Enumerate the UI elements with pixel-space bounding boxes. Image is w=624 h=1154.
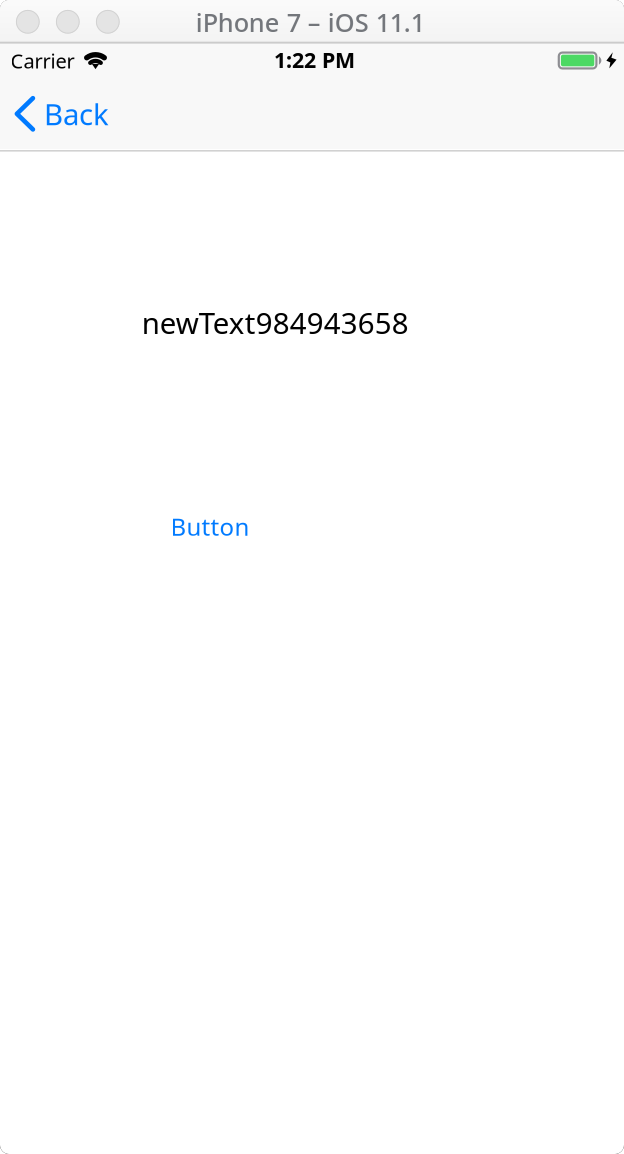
staticText: iPhone 7 – iOS 11.1	[196, 5, 425, 39]
button[interactable]: Back	[8, 77, 115, 150]
button[interactable]: Zoom window	[96, 10, 120, 34]
button[interactable]: Button	[163, 501, 256, 551]
staticText: newText984943658	[142, 303, 409, 342]
button[interactable]: Minimize window	[56, 10, 80, 34]
staticText: 1:22 PM	[274, 45, 355, 74]
staticText: Back	[44, 94, 109, 133]
navigationBar	[0, 77, 624, 150]
button[interactable]: Close window	[16, 10, 40, 34]
staticText: Button	[170, 510, 249, 542]
staticText: Carrier	[11, 47, 75, 74]
